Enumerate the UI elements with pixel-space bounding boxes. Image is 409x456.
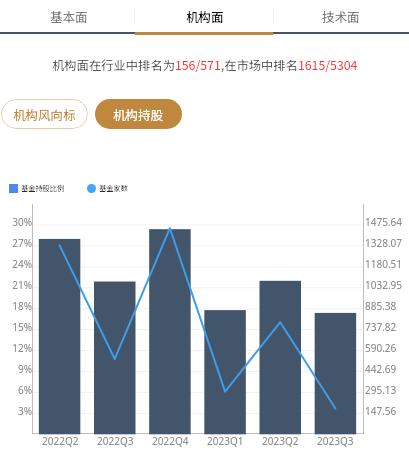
staticText: 9% xyxy=(17,362,32,376)
staticText: 12% xyxy=(12,341,32,355)
staticText: 24% xyxy=(12,257,32,271)
staticText: 基金持股比例 xyxy=(21,183,65,193)
button[interactable]: 基本面 xyxy=(0,0,137,32)
staticText: 1180.51 xyxy=(365,257,402,271)
staticText: 147.56 xyxy=(365,404,397,418)
staticText: 2023Q2 xyxy=(262,434,299,448)
staticText: 295.13 xyxy=(365,383,397,397)
staticText: 2023Q1 xyxy=(207,434,244,448)
staticText: 2023Q3 xyxy=(317,434,354,448)
staticText: 机构持股 xyxy=(113,105,164,123)
staticText: 技术面 xyxy=(322,7,360,25)
staticText: 1032.95 xyxy=(365,278,402,292)
staticText: 基金家数 xyxy=(99,183,128,193)
staticText: 机构风向标 xyxy=(13,105,76,123)
staticText: 6% xyxy=(17,383,32,397)
button[interactable]: 机构持股 xyxy=(95,99,182,129)
staticText: 21% xyxy=(12,278,32,292)
button[interactable]: 机构风向标 xyxy=(1,99,88,129)
staticText: 15% xyxy=(12,320,32,334)
staticText: 737.82 xyxy=(365,320,397,334)
staticText: 442.69 xyxy=(365,362,397,376)
staticText: 27% xyxy=(12,236,32,250)
button[interactable]: 机构面 xyxy=(137,0,273,32)
staticText: 2022Q2 xyxy=(42,434,79,448)
staticText: 2022Q4 xyxy=(152,434,189,448)
staticText: 机构面 xyxy=(186,7,224,25)
staticText: 30% xyxy=(12,215,32,229)
staticText: 18% xyxy=(12,299,32,313)
staticText: 1328.07 xyxy=(365,236,402,250)
staticText: 885.38 xyxy=(365,299,397,313)
staticText: 1475.64 xyxy=(365,215,402,229)
staticText: 2022Q3 xyxy=(97,434,134,448)
staticText: 机构面在行业中排名为156/571,在市场中排名1615/5304 xyxy=(52,56,358,74)
staticText: 3% xyxy=(17,404,32,418)
staticText: 590.26 xyxy=(365,341,397,355)
staticText: 基本面 xyxy=(50,7,88,25)
button[interactable]: 技术面 xyxy=(273,0,409,32)
